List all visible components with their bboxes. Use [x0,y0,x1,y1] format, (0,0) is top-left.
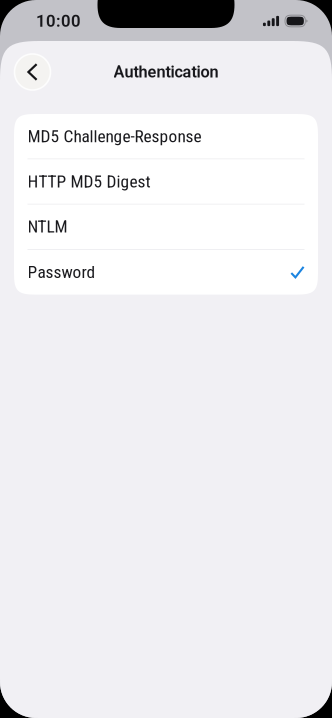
button[interactable]: HTTP MD5 Digest [14,159,318,204]
staticText: MD5 Challenge-Response [27,126,201,146]
staticText: Password [27,262,95,282]
button[interactable]: Back [14,54,50,90]
button[interactable]: NTLM [14,204,318,250]
staticText: NTLM [27,216,67,237]
staticText: Authentication [113,62,218,82]
button[interactable]: Password [14,250,318,295]
staticText: 10:00 [36,11,81,31]
staticText: HTTP MD5 Digest [27,171,150,192]
button[interactable]: MD5 Challenge-Response [14,114,318,159]
